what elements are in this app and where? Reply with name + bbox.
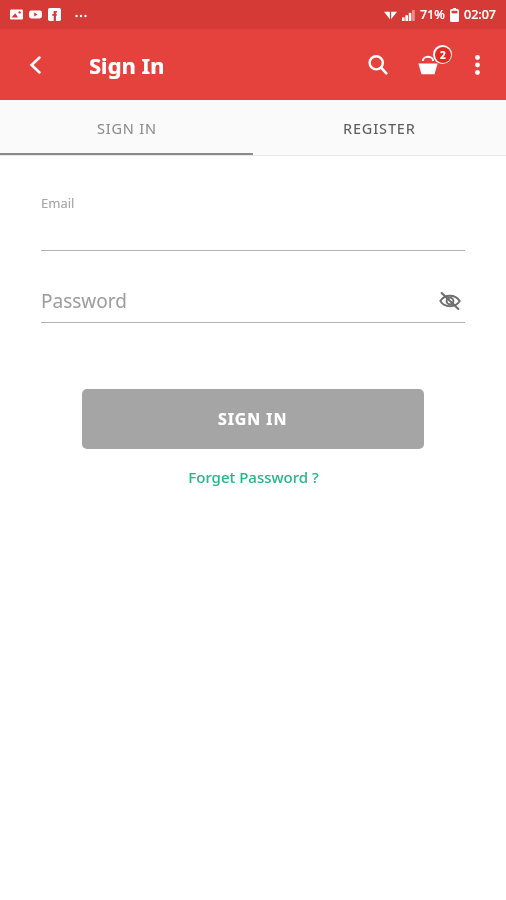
button[interactable]: REGISTER xyxy=(253,100,506,156)
staticText: SIGN IN xyxy=(97,118,157,138)
staticText: 2 xyxy=(440,48,446,62)
button[interactable]: Email xyxy=(41,194,465,250)
button[interactable]: Forget Password ? xyxy=(180,465,327,489)
staticText: Password xyxy=(41,288,127,314)
button[interactable]: Back xyxy=(12,41,60,89)
staticText: 71% xyxy=(420,6,445,23)
button[interactable]: Cart, 2 items xyxy=(402,39,454,91)
button[interactable]: Password xyxy=(41,285,465,317)
button[interactable]: SIGN IN xyxy=(82,389,424,449)
staticText: Forget Password ? xyxy=(188,467,319,487)
staticText: REGISTER xyxy=(343,118,416,138)
button[interactable]: Show password xyxy=(435,286,465,316)
staticText: SIGN IN xyxy=(218,408,288,430)
staticText: Sign In xyxy=(89,50,165,80)
button[interactable]: More options xyxy=(454,42,500,88)
staticText: Email xyxy=(41,194,75,212)
button[interactable]: Search xyxy=(354,41,402,89)
staticText: 02:07 xyxy=(464,6,497,23)
button[interactable]: SIGN IN xyxy=(0,100,253,156)
